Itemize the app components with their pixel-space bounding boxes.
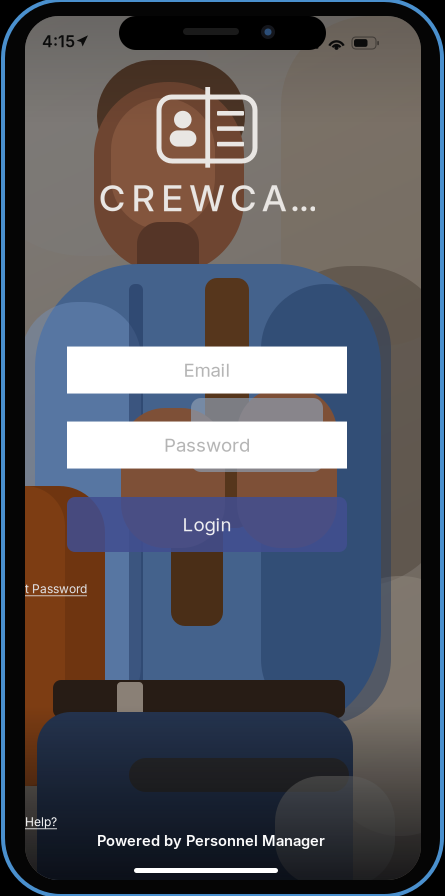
button[interactable]: Forgot Password [0,578,423,599]
staticText: 4:15 [42,32,75,51]
button[interactable]: Password [67,421,347,468]
staticText: CREWCARD [99,177,342,219]
staticText: Forgot Password [0,582,87,596]
staticText: Powered by Personnel Manager [97,832,325,849]
staticText: Password [164,434,250,456]
button[interactable]: Email [67,346,347,393]
button[interactable]: Login [67,497,347,552]
staticText: Need Help? [0,815,57,829]
staticText: Email [183,359,230,381]
button[interactable]: Need Help? [0,811,422,832]
staticText: Login [182,513,231,535]
